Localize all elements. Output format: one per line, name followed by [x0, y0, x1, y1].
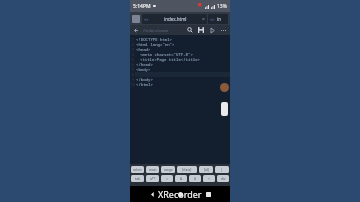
staticText: /htdocs/www — [143, 28, 169, 33]
staticText: <head> — [136, 47, 151, 52]
button[interactable]: Home — [174, 188, 186, 200]
staticText: # — [194, 177, 197, 181]
staticText: 13% — [217, 3, 227, 10]
staticText: <> — [144, 17, 149, 22]
staticText: main — [149, 168, 157, 172]
button[interactable]: Recent apps — [202, 188, 214, 200]
button[interactable]: Undo — [133, 27, 140, 34]
staticText: select — [133, 168, 142, 172]
button[interactable]: main — [146, 166, 159, 173]
staticText: 10 — [131, 83, 135, 87]
staticText: <> — [210, 17, 215, 22]
staticText: 5 — [132, 58, 134, 62]
staticText: XRecorder — [158, 188, 202, 200]
staticText: 6 — [132, 63, 134, 67]
staticText: div — [221, 177, 226, 181]
staticText: <html lang="en"> — [136, 42, 175, 47]
staticText: 9 — [132, 78, 134, 82]
button[interactable]: <> — [208, 14, 228, 24]
button[interactable]: # — [189, 175, 201, 182]
staticText: 7 — [132, 68, 134, 72]
staticText: 1 — [132, 38, 134, 42]
staticText: 4 — [132, 53, 134, 57]
staticText: tab — [135, 177, 140, 181]
staticText: | — [221, 168, 223, 172]
staticText: range — [164, 168, 173, 172]
button[interactable]: Run — [208, 26, 216, 34]
staticText: <body> — [136, 67, 151, 72]
button[interactable]: a** — [146, 175, 159, 182]
staticText: 3 — [132, 48, 134, 52]
staticText: [class] — [182, 168, 192, 172]
button[interactable]: Back — [146, 188, 158, 200]
button[interactable] — [221, 102, 228, 116]
button[interactable]: & — [175, 175, 187, 182]
staticText: in — [217, 16, 221, 22]
button[interactable]: More options — [219, 26, 227, 34]
staticText: </head> — [136, 62, 153, 67]
staticText: <meta charset="UTF-8"> — [140, 52, 193, 57]
staticText: a** — [150, 177, 156, 181]
staticText: 2 — [132, 43, 134, 47]
button[interactable]: range — [161, 166, 175, 173]
staticText: × — [202, 16, 205, 23]
button[interactable]: select — [131, 166, 144, 173]
button[interactable]: <> — [142, 14, 207, 24]
staticText: [id] — [204, 168, 209, 172]
button[interactable]: [class] — [177, 166, 197, 173]
staticText: <!DOCTYPE html> — [136, 37, 172, 42]
staticText: & — [180, 177, 183, 181]
staticText: 5:14PM — [133, 3, 151, 10]
staticText: 8 — [132, 73, 134, 77]
staticText: <title>Page title</title> — [140, 57, 200, 62]
button[interactable]: Open file drawer — [132, 15, 140, 23]
button[interactable]: Search — [186, 26, 194, 34]
button[interactable]: [id] — [199, 166, 213, 173]
button[interactable]: Assistant bubble — [220, 83, 229, 92]
staticText: < — [208, 177, 210, 181]
button[interactable]: = — [161, 175, 173, 182]
button[interactable]: tab — [131, 175, 144, 182]
button[interactable]: < — [203, 175, 215, 182]
button[interactable]: Save — [197, 26, 205, 34]
button[interactable]: | — [215, 166, 229, 173]
button[interactable]: div — [217, 175, 229, 182]
staticText: index.html — [164, 16, 187, 22]
staticText: </body> — [136, 77, 153, 82]
staticText: = — [166, 177, 168, 181]
staticText: </html> — [136, 82, 153, 87]
